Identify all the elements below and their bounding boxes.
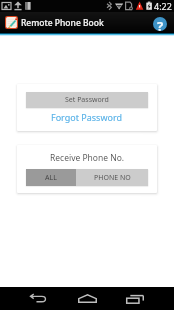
button[interactable]: Help bbox=[153, 17, 167, 31]
staticText: Receive Phone No. bbox=[50, 152, 125, 164]
button[interactable]: ALL bbox=[26, 169, 76, 186]
button[interactable]: Home bbox=[73, 287, 102, 310]
staticText: ALL bbox=[45, 173, 57, 183]
staticText: Forgot Password bbox=[51, 111, 123, 123]
button[interactable]: Forgot Password bbox=[51, 111, 123, 123]
staticText: Set Password bbox=[65, 95, 109, 105]
button[interactable]: Back bbox=[24, 287, 53, 310]
button[interactable]: Set Password bbox=[26, 92, 148, 108]
staticText: ? bbox=[157, 17, 164, 31]
staticText: 4:22 bbox=[154, 0, 172, 12]
staticText: Remote Phone Book bbox=[21, 17, 104, 29]
staticText: PHONE NO bbox=[94, 173, 131, 183]
button[interactable]: Recent apps bbox=[120, 287, 149, 310]
button[interactable]: PHONE NO bbox=[76, 169, 148, 186]
